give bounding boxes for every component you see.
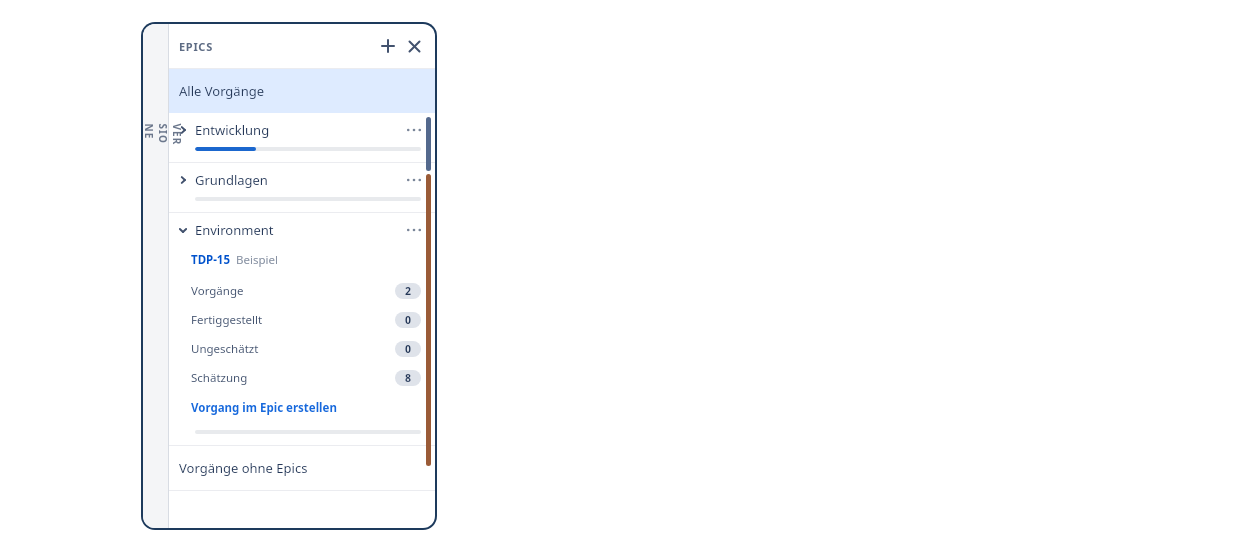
staticText: Schätzung	[191, 370, 248, 386]
other: Mehr Aktionen	[405, 174, 423, 186]
button[interactable]: Vorgänge ohne Epics	[169, 446, 435, 490]
staticText: Grundlagen	[195, 171, 268, 189]
staticText: Vorgänge ohne Epics	[179, 459, 308, 477]
button[interactable]: Schätzung	[169, 363, 435, 392]
button[interactable]: Schließen	[403, 35, 425, 57]
button[interactable]: Environment	[169, 213, 435, 247]
staticText: Alle Vorgänge	[179, 82, 265, 100]
staticText: EPICS	[179, 39, 213, 54]
staticText: Vorgang im Epic erstellen	[191, 400, 337, 416]
button[interactable]: Alle Vorgänge	[169, 69, 435, 113]
staticText: 8	[405, 371, 412, 385]
button[interactable]: Entwicklung	[169, 113, 435, 163]
staticText: Fertiggestellt	[191, 312, 263, 328]
staticText: Environment	[195, 221, 274, 239]
button[interactable]: Ungeschätzt	[169, 334, 435, 363]
staticText: Beispiel	[236, 252, 278, 268]
button[interactable]: VERSIONEN	[143, 24, 168, 528]
staticText: 0	[405, 342, 412, 356]
staticText: TDP-15	[191, 252, 231, 268]
button[interactable]: Fertiggestellt	[169, 305, 435, 334]
staticText: Vorgänge	[191, 283, 244, 299]
other: Mehr Aktionen	[405, 124, 423, 136]
button[interactable]: Grundlagen	[169, 163, 435, 213]
button[interactable]: TDP-15	[169, 247, 435, 273]
button[interactable]: Vorgang im Epic erstellen	[169, 398, 435, 418]
button[interactable]: Vorgänge	[169, 276, 435, 305]
other: Mehr Aktionen	[405, 224, 423, 236]
staticText: 0	[405, 313, 412, 327]
staticText: Entwicklung	[195, 121, 270, 139]
staticText: Ungeschätzt	[191, 341, 259, 357]
staticText: 2	[405, 284, 412, 298]
button[interactable]: Epic hinzufügen	[377, 35, 399, 57]
staticText: VERSIONEN	[143, 123, 183, 148]
